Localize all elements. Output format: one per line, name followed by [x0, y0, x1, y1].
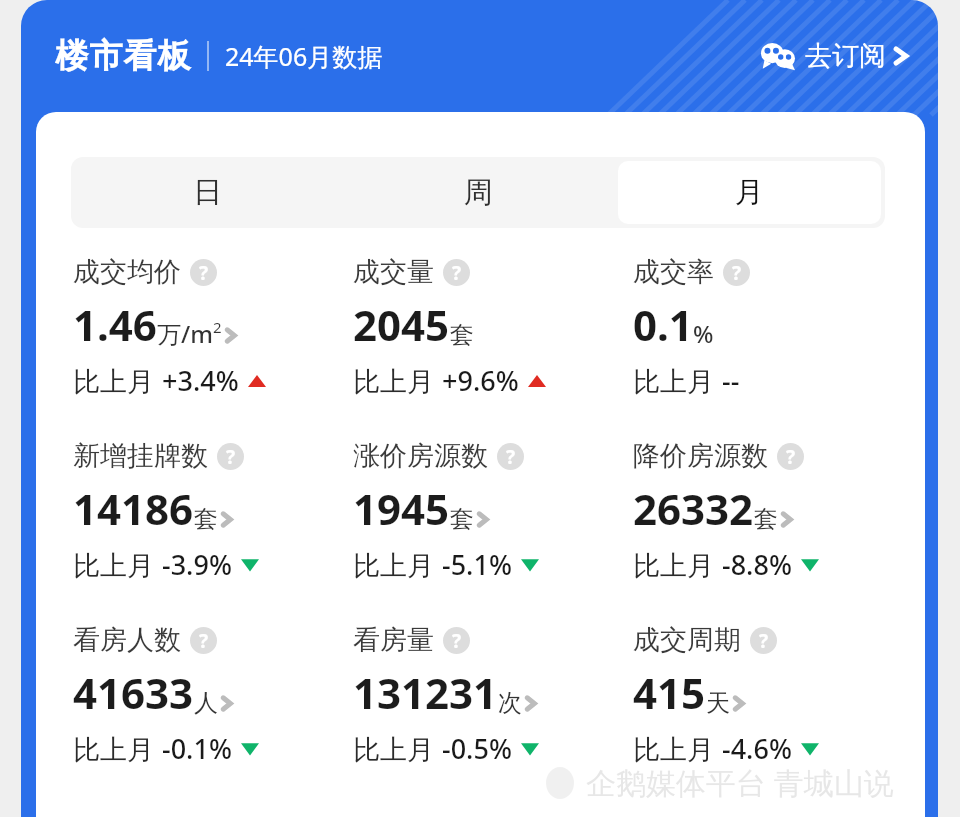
button[interactable]: 成交率 — [633, 255, 758, 399]
staticText: 1.46 — [73, 296, 157, 353]
staticText: 415 — [633, 664, 706, 721]
staticText: 比上月 — [633, 362, 722, 399]
staticText: 1945 — [353, 480, 450, 537]
staticText: 企鹅媒体平台 青城山说 — [586, 762, 894, 803]
staticText: % — [693, 317, 714, 350]
staticText: -5.1% — [442, 546, 512, 583]
staticText: -- — [722, 362, 740, 399]
staticText: 楼市看板 — [55, 35, 191, 77]
button[interactable]: 新增挂牌数 — [73, 439, 268, 583]
staticText: 去订阅 — [805, 39, 886, 73]
staticText: 0.1 — [633, 296, 693, 353]
staticText: 套 — [450, 320, 474, 350]
staticText: +9.6% — [442, 362, 519, 399]
staticText: 看房量 — [353, 623, 434, 657]
button[interactable]: 看房人数 — [73, 623, 268, 767]
staticText: ? — [732, 260, 742, 286]
staticText: 比上月 — [73, 546, 162, 583]
staticText: 月 — [735, 174, 764, 211]
button[interactable]: 周 — [347, 161, 610, 224]
button[interactable]: 日 — [75, 161, 339, 224]
button[interactable]: WeChat — [755, 33, 914, 79]
staticText: 新增挂牌数 — [73, 439, 208, 473]
staticText: -4.6% — [722, 730, 792, 767]
button[interactable]: 月 — [618, 161, 881, 224]
staticText: 14186 — [73, 480, 194, 537]
staticText: 比上月 — [353, 362, 442, 399]
staticText: 24年06月数据 — [225, 39, 383, 73]
staticText: 2045 — [353, 296, 450, 353]
staticText: 比上月 — [633, 730, 722, 767]
button[interactable]: 看房量 — [353, 623, 548, 767]
staticText: ? — [199, 628, 209, 654]
staticText: 日 — [193, 174, 222, 211]
staticText: -8.8% — [722, 546, 792, 583]
staticText: -3.9% — [162, 546, 232, 583]
staticText: 比上月 — [633, 546, 722, 583]
staticText: +3.4% — [162, 362, 239, 399]
staticText: 套 — [754, 504, 778, 534]
staticText: 成交均价 — [73, 255, 181, 289]
staticText: ? — [759, 628, 769, 654]
staticText: 看房人数 — [73, 623, 181, 657]
staticText: ? — [786, 444, 796, 470]
staticText: ? — [199, 260, 209, 286]
staticText: 套 — [194, 504, 218, 534]
button[interactable]: 成交均价 — [73, 255, 275, 399]
staticText: 成交率 — [633, 255, 714, 289]
staticText: 成交量 — [353, 255, 434, 289]
staticText: 涨价房源数 — [353, 439, 488, 473]
staticText: 比上月 — [73, 362, 162, 399]
staticText: 次 — [498, 688, 522, 718]
button[interactable]: 成交量 — [353, 255, 555, 399]
staticText: 人 — [194, 688, 218, 718]
other: WeChat — [761, 43, 795, 69]
button[interactable]: 降价房源数 — [633, 439, 828, 583]
staticText: ? — [452, 260, 462, 286]
staticText: ? — [506, 444, 516, 470]
staticText: 比上月 — [353, 546, 442, 583]
staticText: ? — [452, 628, 462, 654]
staticText: 131231 — [353, 664, 498, 721]
staticText: 降价房源数 — [633, 439, 768, 473]
staticText: 41633 — [73, 664, 194, 721]
staticText: 26332 — [633, 480, 754, 537]
staticText: -0.1% — [162, 730, 232, 767]
button[interactable]: 成交周期 — [633, 623, 828, 767]
button[interactable]: 涨价房源数 — [353, 439, 548, 583]
staticText: 成交周期 — [633, 623, 741, 657]
staticText: 天 — [706, 688, 730, 718]
staticText: 比上月 — [353, 730, 442, 767]
staticText: 周 — [464, 174, 493, 211]
staticText: 2 — [213, 317, 222, 337]
staticText: 万/m — [157, 317, 213, 350]
staticText: ? — [226, 444, 236, 470]
staticText: 套 — [450, 504, 474, 534]
staticText: 比上月 — [73, 730, 162, 767]
staticText: -0.5% — [442, 730, 512, 767]
